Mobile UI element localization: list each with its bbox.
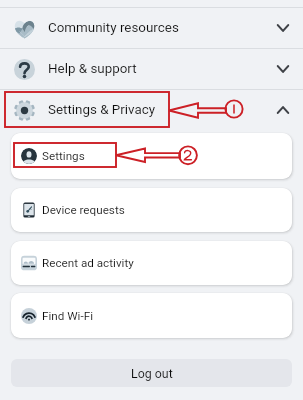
staticText: Help & support: [48, 61, 137, 77]
button[interactable]: Settings: [11, 133, 292, 179]
staticText: Device requests: [42, 203, 125, 217]
staticText: Log out: [131, 366, 173, 381]
staticText: Find Wi-Fi: [42, 309, 93, 323]
button[interactable]: Find Wi-Fi: [11, 293, 292, 338]
staticText: Recent ad activity: [42, 256, 134, 270]
staticText: Settings & Privacy: [48, 102, 156, 118]
button[interactable]: Recent ad activity: [11, 241, 292, 285]
button[interactable]: Help & support: [0, 49, 303, 89]
button[interactable]: Log out: [11, 359, 292, 387]
staticText: Community resources: [48, 20, 179, 36]
button[interactable]: Device requests: [11, 188, 292, 232]
staticText: Settings: [42, 149, 85, 163]
button[interactable]: Community resources: [0, 8, 303, 48]
button[interactable]: Settings & Privacy: [0, 90, 303, 130]
